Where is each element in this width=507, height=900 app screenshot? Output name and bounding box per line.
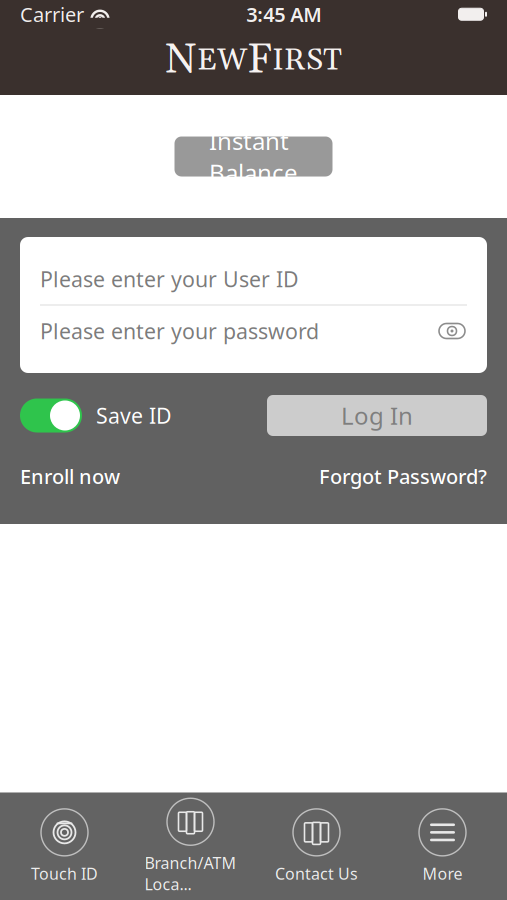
button[interactable]: Instant Balance: [174, 136, 332, 176]
staticText: Forgot Password?: [319, 463, 487, 490]
staticText: Contact Us: [275, 863, 358, 884]
staticText: Carrier: [20, 1, 84, 28]
staticText: Please enter your User ID: [40, 265, 299, 293]
staticText: Log In: [341, 400, 413, 431]
staticText: EW: [197, 41, 247, 80]
staticText: More: [422, 863, 462, 884]
staticText: F: [247, 34, 272, 87]
staticText: N: [165, 34, 197, 87]
button[interactable]: Enroll now: [20, 463, 120, 490]
staticText: 3:45 AM: [246, 1, 322, 28]
button[interactable]: More: [379, 799, 505, 894]
staticText: Touch ID: [31, 863, 98, 884]
button[interactable]: Forgot Password?: [319, 463, 487, 490]
button[interactable]: Log In: [267, 395, 487, 436]
staticText: Branch/ATM Loca...: [144, 852, 236, 895]
staticText: Enroll now: [20, 463, 120, 490]
button[interactable]: Touch ID: [1, 799, 127, 894]
button[interactable]: Contact Us: [253, 799, 379, 894]
button[interactable]: Save ID: [20, 398, 172, 432]
button[interactable]: Show password: [437, 318, 467, 344]
staticText: IRST: [272, 41, 342, 80]
staticText: Instant Balance: [209, 125, 298, 188]
staticText: Save ID: [96, 401, 172, 430]
button[interactable]: Branch/ATM Loca...: [127, 799, 253, 894]
staticText: Please enter your password: [40, 317, 319, 345]
